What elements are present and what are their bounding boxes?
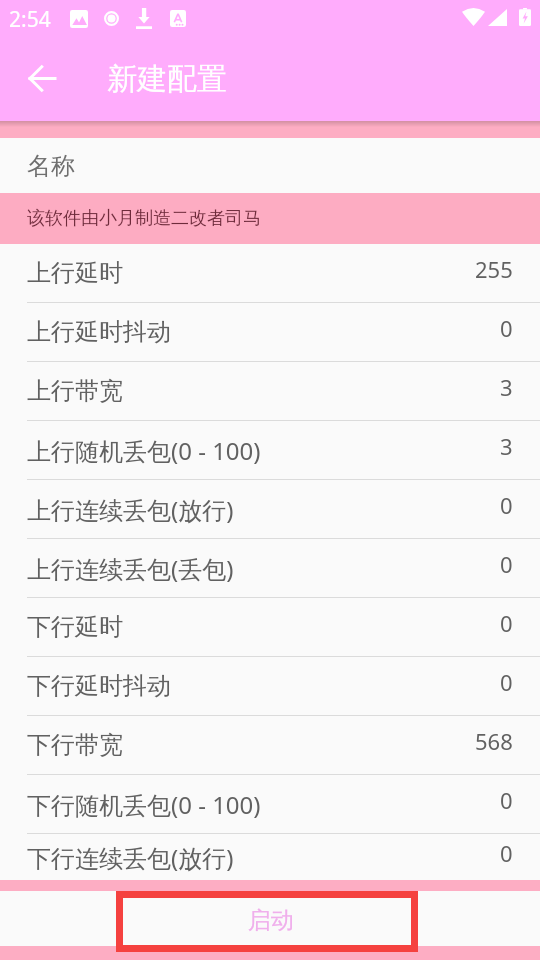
button[interactable]: 启动 <box>116 891 418 952</box>
staticText: 0 <box>500 490 513 520</box>
button[interactable]: 下行连续丢包(放行) <box>0 834 540 880</box>
staticText: 0 <box>500 549 513 579</box>
staticText: 0 <box>500 608 513 638</box>
staticText: 该软件由小月制造二改者司马 <box>27 207 261 230</box>
staticText: 下行延时抖动 <box>27 671 171 701</box>
staticText: 上行延时 <box>27 258 123 288</box>
staticText: 255 <box>475 254 513 284</box>
staticText: 上行连续丢包(放行) <box>27 493 234 526</box>
staticText: 上行带宽 <box>27 376 123 406</box>
button[interactable]: 上行延时抖动 <box>0 303 540 362</box>
staticText: 下行带宽 <box>27 730 123 760</box>
staticText: 0 <box>500 667 513 697</box>
button[interactable]: 上行连续丢包(放行) <box>0 480 540 539</box>
staticText: 0 <box>500 785 513 815</box>
button[interactable]: Back <box>14 50 70 106</box>
staticText: 新建配置 <box>107 60 227 98</box>
staticText: 568 <box>475 726 513 756</box>
staticText: 下行连续丢包(放行) <box>27 841 234 874</box>
staticText: 启动 <box>248 906 294 935</box>
button[interactable]: 下行带宽 <box>0 716 540 775</box>
button[interactable]: 下行延时 <box>0 598 540 657</box>
staticText: 上行随机丢包(0 - 100) <box>27 434 261 467</box>
button[interactable]: 下行延时抖动 <box>0 657 540 716</box>
button[interactable]: 上行延时 <box>0 244 540 303</box>
staticText: 0 <box>500 313 513 343</box>
staticText: 3 <box>500 431 513 461</box>
staticText: 3 <box>500 372 513 402</box>
staticText: 上行连续丢包(丢包) <box>27 552 234 585</box>
staticText: 下行延时 <box>27 612 123 642</box>
button[interactable]: 上行连续丢包(丢包) <box>0 539 540 598</box>
staticText: 2:54 <box>9 5 51 34</box>
button[interactable]: 该软件由小月制造二改者司马 <box>0 193 540 244</box>
button[interactable]: 名称 <box>0 138 540 193</box>
staticText: 上行延时抖动 <box>27 317 171 347</box>
staticText: 0 <box>500 838 513 868</box>
button[interactable]: 下行随机丢包(0 - 100) <box>0 775 540 834</box>
staticText: 名称 <box>27 151 75 181</box>
staticText: 下行随机丢包(0 - 100) <box>27 788 261 821</box>
button[interactable]: 上行随机丢包(0 - 100) <box>0 421 540 480</box>
button[interactable]: 上行带宽 <box>0 362 540 421</box>
